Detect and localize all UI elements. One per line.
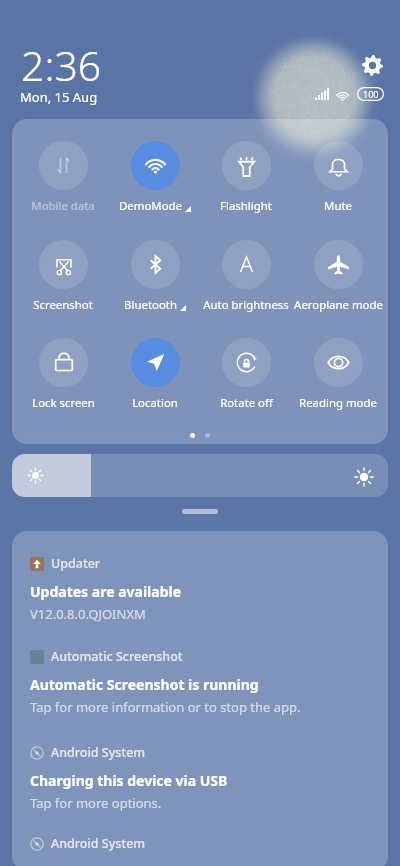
button[interactable]: Android System: [12, 743, 388, 823]
button[interactable]: Aeroplane mode: [291, 240, 385, 313]
staticText: DemoMode: [119, 198, 182, 214]
staticText: 2:36: [21, 37, 102, 93]
staticText: Flashlight: [220, 198, 272, 214]
staticText: Android System: [51, 835, 146, 852]
staticText: Screenshot: [33, 297, 93, 313]
staticText: Lock screen: [32, 395, 95, 411]
staticText: Android System: [51, 744, 146, 761]
button[interactable]: DemoMode: [108, 141, 202, 214]
button[interactable]: Reading mode: [291, 338, 385, 411]
staticText: Auto brightness: [203, 297, 289, 313]
button[interactable]: Lock screen: [16, 338, 110, 411]
staticText: Bluetooth: [124, 297, 177, 313]
staticText: Mute: [324, 198, 352, 214]
button[interactable]: Automatic Screenshot: [12, 647, 388, 727]
staticText: Tap for more options.: [30, 794, 162, 812]
button[interactable]: Flashlight: [199, 141, 293, 214]
button[interactable]: Mute: [291, 141, 385, 214]
button[interactable]: Location: [108, 338, 202, 411]
staticText: Location: [132, 395, 178, 411]
button[interactable]: Mobile data: [16, 141, 110, 214]
staticText: Rotate off: [220, 395, 273, 411]
button[interactable]: Updater: [12, 554, 388, 634]
button[interactable]: Bluetooth: [108, 240, 202, 313]
button[interactable]: Auto brightness: [199, 240, 293, 313]
staticText: Charging this device via USB: [30, 771, 228, 790]
staticText: Updater: [51, 555, 101, 572]
staticText: V12.0.8.0.QJOINXM: [30, 605, 146, 623]
staticText: 100: [363, 88, 379, 100]
staticText: Tap for more information or to stop the …: [30, 698, 301, 716]
staticText: Mobile data: [31, 198, 95, 214]
button[interactable]: Screenshot: [16, 240, 110, 313]
button[interactable]: Settings: [354, 47, 390, 83]
staticText: Mon, 15 Aug: [20, 88, 98, 106]
staticText: Reading mode: [299, 395, 377, 411]
button[interactable]: Rotate off: [199, 338, 293, 411]
staticText: Automatic Screenshot is running: [30, 675, 259, 694]
staticText: Automatic Screenshot: [51, 648, 183, 665]
button[interactable]: Android System: [12, 834, 388, 866]
button[interactable]: [12, 454, 388, 497]
staticText: Updates are available: [30, 582, 182, 601]
staticText: Aeroplane mode: [294, 297, 383, 313]
